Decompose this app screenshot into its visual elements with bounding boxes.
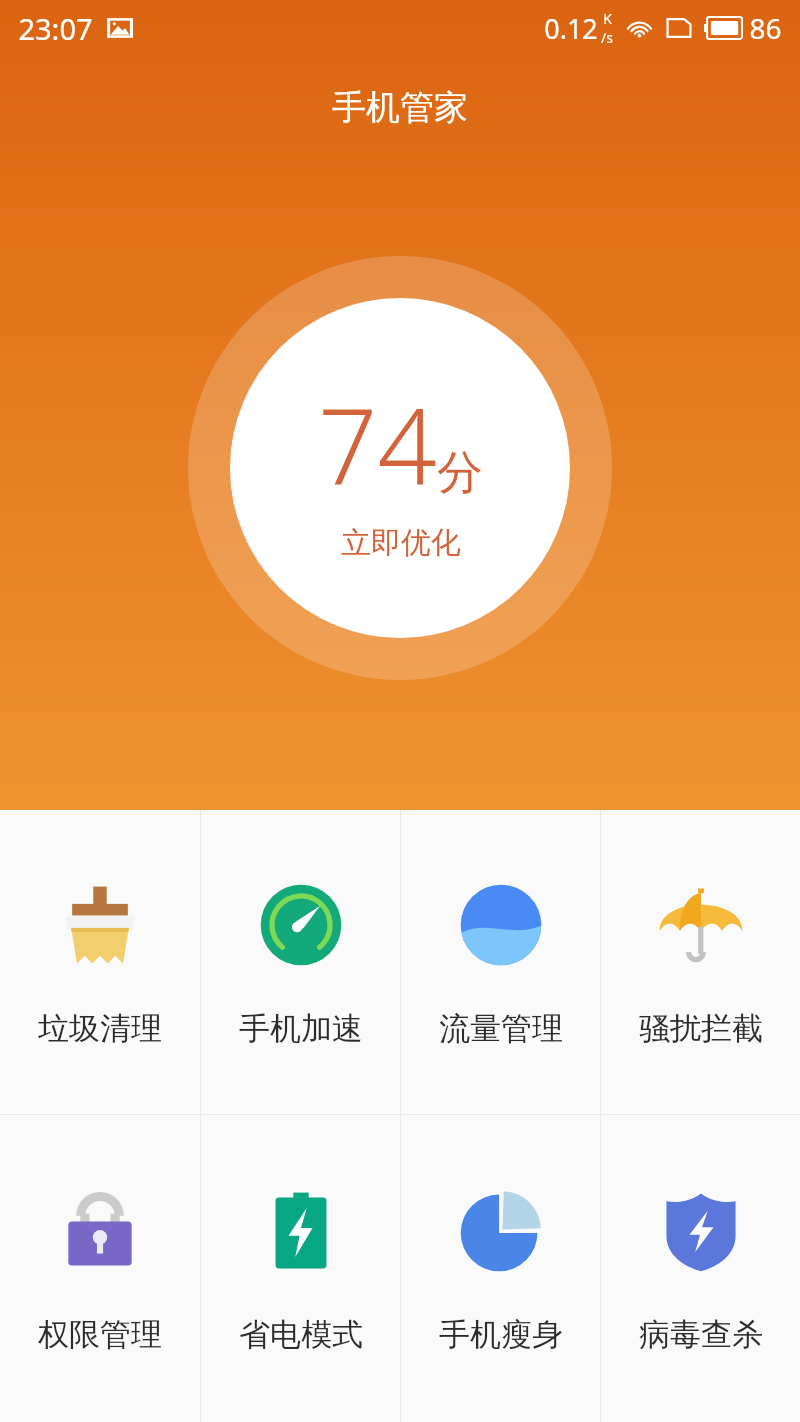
- staticText: 86: [749, 9, 782, 47]
- staticText: 立即优化: [341, 524, 461, 562]
- staticText: 0.12: [544, 10, 598, 47]
- staticText: 23:07: [18, 9, 93, 48]
- staticText: 74: [318, 374, 437, 516]
- staticText: 病毒查杀: [639, 1315, 763, 1354]
- staticText: 手机管家: [332, 86, 468, 129]
- button[interactable]: 74: [188, 256, 612, 680]
- staticText: 垃圾清理: [38, 1009, 162, 1048]
- staticText: K: [603, 9, 612, 28]
- button[interactable]: 手机加速: [201, 810, 400, 1114]
- staticText: 省电模式: [239, 1315, 363, 1354]
- button[interactable]: 权限管理: [0, 1115, 200, 1422]
- staticText: 流量管理: [439, 1009, 563, 1048]
- staticText: /s: [601, 28, 613, 47]
- button[interactable]: 流量管理: [401, 810, 600, 1114]
- button[interactable]: 手机瘦身: [401, 1115, 600, 1422]
- staticText: 分: [437, 444, 483, 502]
- button[interactable]: 病毒查杀: [601, 1115, 800, 1422]
- staticText: 骚扰拦截: [639, 1009, 763, 1048]
- button[interactable]: 骚扰拦截: [601, 810, 800, 1114]
- button[interactable]: 垃圾清理: [0, 810, 200, 1114]
- staticText: 权限管理: [38, 1315, 162, 1354]
- staticText: 手机加速: [239, 1009, 363, 1048]
- button[interactable]: 省电模式: [201, 1115, 400, 1422]
- staticText: 手机瘦身: [439, 1315, 563, 1354]
